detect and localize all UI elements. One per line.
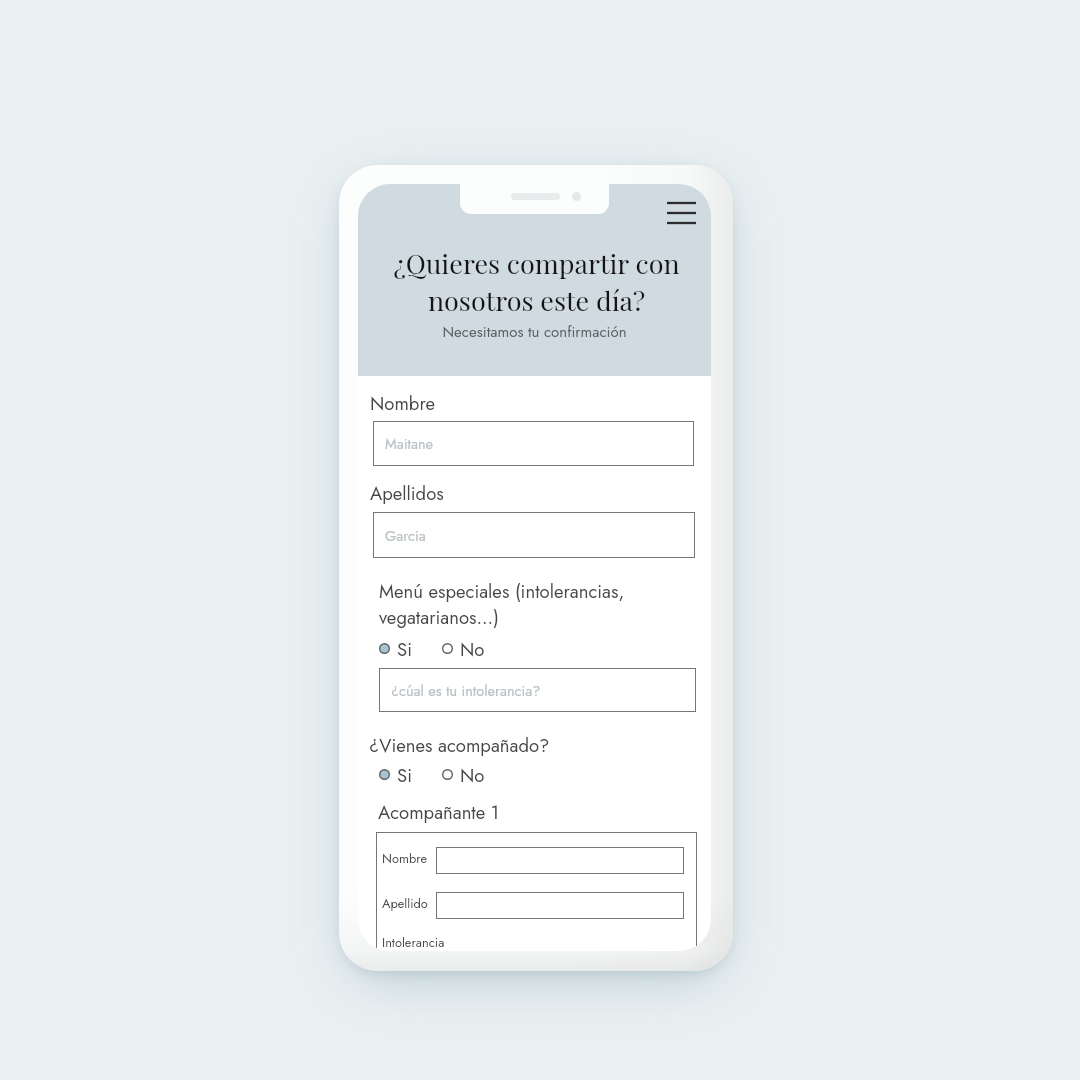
staticText: Necesitamos tu confirmación xyxy=(358,321,711,343)
staticText: Nombre xyxy=(370,390,436,417)
button[interactable] xyxy=(436,847,684,874)
staticText: Si xyxy=(397,762,412,786)
staticText: Apellidos xyxy=(370,480,444,507)
staticText: Garcia xyxy=(385,525,426,546)
button[interactable]: ¿cúal es tu intolerancia? xyxy=(379,668,696,712)
staticText: Apellido xyxy=(382,894,428,912)
staticText: Maitane xyxy=(385,433,434,454)
button[interactable]: Si xyxy=(379,636,412,660)
staticText: No xyxy=(460,762,485,786)
button[interactable]: No xyxy=(442,762,485,786)
button[interactable]: Si xyxy=(379,762,412,786)
button[interactable] xyxy=(436,892,684,919)
staticText: Intolerancia xyxy=(382,933,445,951)
button[interactable]: Maitane xyxy=(373,421,694,466)
button[interactable]: Garcia xyxy=(373,512,695,558)
button[interactable]: No xyxy=(442,636,485,660)
staticText: ¿Quieres compartir con nosotros este día… xyxy=(372,245,701,318)
staticText: ¿Vienes acompañado? xyxy=(369,732,550,759)
button[interactable]: Menu xyxy=(661,193,702,232)
staticText: Menú especiales (intolerancias, vegatari… xyxy=(379,578,625,631)
staticText: ¿cúal es tu intolerancia? xyxy=(391,680,541,701)
staticText: No xyxy=(460,636,485,660)
staticText: Si xyxy=(397,636,412,660)
staticText: Acompañante 1 xyxy=(378,799,500,826)
staticText: Nombre xyxy=(382,849,427,867)
